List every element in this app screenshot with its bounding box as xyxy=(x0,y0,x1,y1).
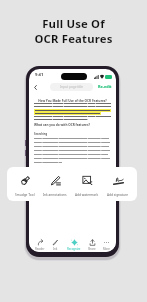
button[interactable]: Input page title xyxy=(50,83,93,91)
button[interactable]: Re-edit xyxy=(97,83,113,90)
button[interactable]: Share xyxy=(87,239,97,251)
staticText: Reader xyxy=(35,247,45,251)
button[interactable]: Recognize xyxy=(66,239,82,251)
button[interactable]: Add signature xyxy=(107,167,129,201)
button[interactable]: Reader xyxy=(34,239,46,251)
staticText: How You Made Full Use of the OCR Feature… xyxy=(33,99,112,103)
staticText: Share xyxy=(88,247,96,251)
staticText: Searching xyxy=(34,132,48,136)
staticText: Re-edit xyxy=(98,84,112,89)
staticText: Ink xyxy=(53,247,58,251)
button[interactable]: Back xyxy=(31,83,39,91)
staticText: Smudge Tool xyxy=(15,193,35,197)
staticText: Input page title xyxy=(60,85,84,89)
staticText: Recognize xyxy=(67,247,81,251)
staticText: Add watermark xyxy=(75,193,99,197)
button[interactable]: Smudge Tool xyxy=(15,167,35,201)
staticText: 9:41 xyxy=(35,72,44,78)
staticText: More xyxy=(103,247,110,251)
staticText: Ink annotations xyxy=(43,193,67,197)
staticText: Full Use Of xyxy=(42,16,105,31)
staticText: Add signature xyxy=(107,193,129,197)
button[interactable]: Ink annotations xyxy=(43,167,67,201)
button[interactable]: Ink xyxy=(51,239,60,251)
staticText: What can you do with OCR features? xyxy=(34,123,90,127)
button[interactable]: Add watermark xyxy=(75,167,99,201)
button[interactable]: More xyxy=(102,239,111,251)
staticText: OCR Features xyxy=(34,31,113,46)
